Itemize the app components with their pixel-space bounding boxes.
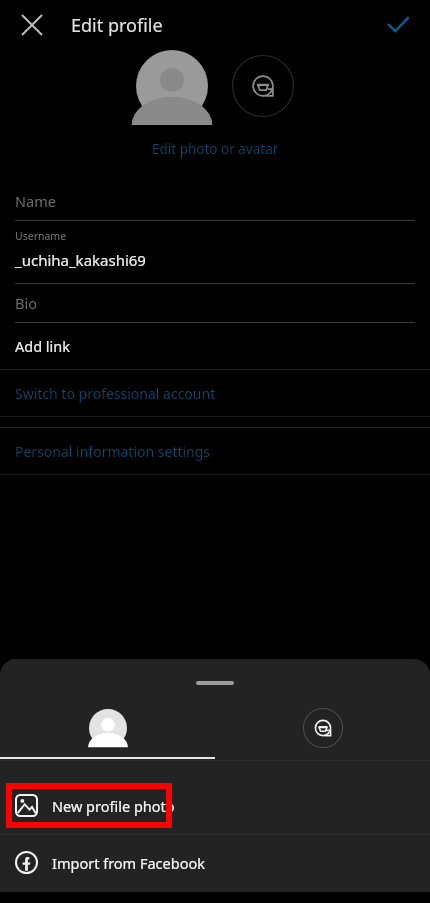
staticText: Edit photo or avatar bbox=[152, 140, 279, 158]
staticText: Bio bbox=[15, 293, 37, 313]
button[interactable]: Edit photo or avatar bbox=[144, 138, 287, 160]
button[interactable]: New profile photo bbox=[0, 777, 430, 834]
staticText: Name bbox=[15, 191, 56, 211]
staticText: New profile photo bbox=[52, 796, 175, 816]
button[interactable]: Avatar bbox=[232, 55, 294, 117]
button[interactable]: Personal information settings bbox=[0, 428, 430, 474]
staticText: Import from Facebook bbox=[52, 853, 205, 873]
button[interactable]: Close bbox=[12, 5, 52, 45]
staticText: Add link bbox=[15, 336, 71, 356]
button[interactable]: Profile photo bbox=[136, 50, 208, 122]
button[interactable]: Add link bbox=[0, 323, 430, 369]
button[interactable]: Import from Facebook bbox=[0, 834, 430, 891]
button[interactable]: Switch to professional account bbox=[0, 370, 430, 416]
staticText: Switch to professional account bbox=[15, 384, 216, 403]
button[interactable]: Photo tab bbox=[0, 704, 215, 752]
staticText: _uchiha_kakashi69 bbox=[15, 250, 146, 270]
button[interactable]: Username bbox=[0, 221, 430, 276]
staticText: Edit profile bbox=[71, 13, 163, 38]
button[interactable]: Done bbox=[378, 5, 418, 45]
button[interactable]: Bio bbox=[0, 284, 430, 322]
button[interactable]: Name bbox=[0, 182, 430, 220]
button[interactable]: Avatar tab bbox=[215, 704, 430, 752]
staticText: Personal information settings bbox=[15, 442, 211, 461]
staticText: Username bbox=[15, 229, 67, 243]
